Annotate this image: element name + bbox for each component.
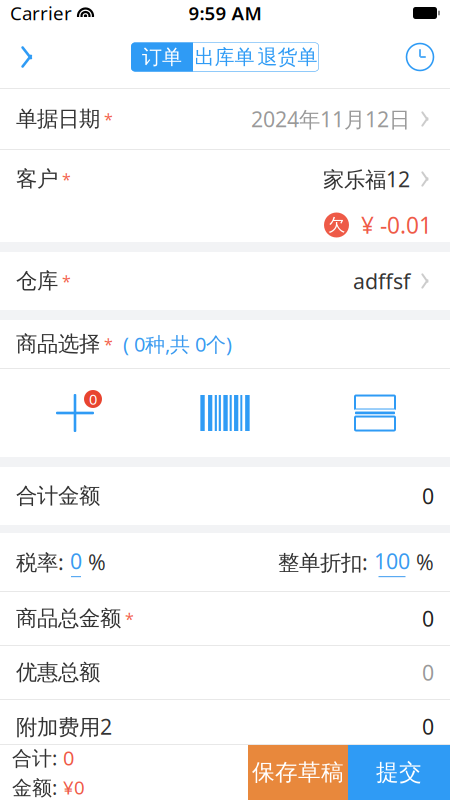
staticText: 税率: <box>16 548 64 576</box>
staticText: 0 <box>422 658 434 687</box>
staticText: 100 <box>374 547 410 575</box>
staticText: ¥0 <box>63 775 85 800</box>
staticText: 金额: <box>12 774 57 800</box>
staticText: 保存草稿 <box>252 759 344 786</box>
button[interactable]: Scan barcode <box>150 369 300 457</box>
staticText: ( 0种,共 0个) <box>113 331 232 357</box>
staticText: 商品选择 <box>16 331 100 357</box>
button[interactable]: 100 <box>368 547 416 577</box>
button[interactable]: 仓库 <box>0 252 450 310</box>
staticText: * <box>58 168 71 190</box>
staticText: 合计: <box>12 744 57 771</box>
staticText: 0 <box>70 547 82 575</box>
staticText: 2024年11月12日 <box>251 105 410 133</box>
staticText: 0 <box>422 712 434 741</box>
button[interactable]: 订单 <box>131 42 193 71</box>
staticText: 商品总金额 <box>16 605 121 632</box>
staticText: * <box>100 108 113 130</box>
staticText: 仓库 <box>16 268 58 294</box>
staticText: * <box>121 608 134 629</box>
staticText: 客户 <box>16 166 58 192</box>
staticText: 优惠总额 <box>16 659 100 686</box>
staticText: adffsf <box>353 267 410 295</box>
staticText: 0 <box>422 604 434 633</box>
button[interactable]: 退货单 <box>256 42 319 71</box>
button[interactable]: 客户 <box>0 150 450 242</box>
staticText: 出库单 <box>194 45 254 69</box>
staticText: 合计金额 <box>16 483 100 509</box>
staticText: 附加费用2 <box>16 712 112 741</box>
button[interactable]: 单据日期 <box>0 89 450 149</box>
staticText: 单据日期 <box>16 106 100 132</box>
staticText: 9:59 AM <box>188 1 261 25</box>
button[interactable]: Back <box>8 35 52 79</box>
staticText: % <box>88 548 106 576</box>
staticText: 0 <box>63 744 74 771</box>
button[interactable]: 出库单 <box>193 42 256 71</box>
staticText: 0 <box>89 389 97 409</box>
staticText: 家乐福12 <box>323 165 410 193</box>
staticText: 提交 <box>376 759 422 786</box>
staticText: * <box>58 270 71 292</box>
staticText: 0 <box>422 482 434 510</box>
staticText: ¥ -0.01 <box>355 210 432 240</box>
button[interactable]: History <box>398 35 442 79</box>
staticText: * <box>100 333 113 355</box>
staticText: % <box>416 548 434 576</box>
staticText: Carrier <box>10 1 72 25</box>
staticText: 退货单 <box>257 45 317 69</box>
staticText: 订单 <box>142 45 182 69</box>
button[interactable]: Add product <box>0 369 150 457</box>
button[interactable]: Product list <box>300 369 450 457</box>
button[interactable]: 0 <box>64 547 88 577</box>
staticText: 欠 <box>328 214 345 236</box>
staticText: 整单折扣: <box>278 548 368 576</box>
button[interactable]: 保存草稿 <box>248 745 348 800</box>
button[interactable]: 提交 <box>348 745 450 800</box>
